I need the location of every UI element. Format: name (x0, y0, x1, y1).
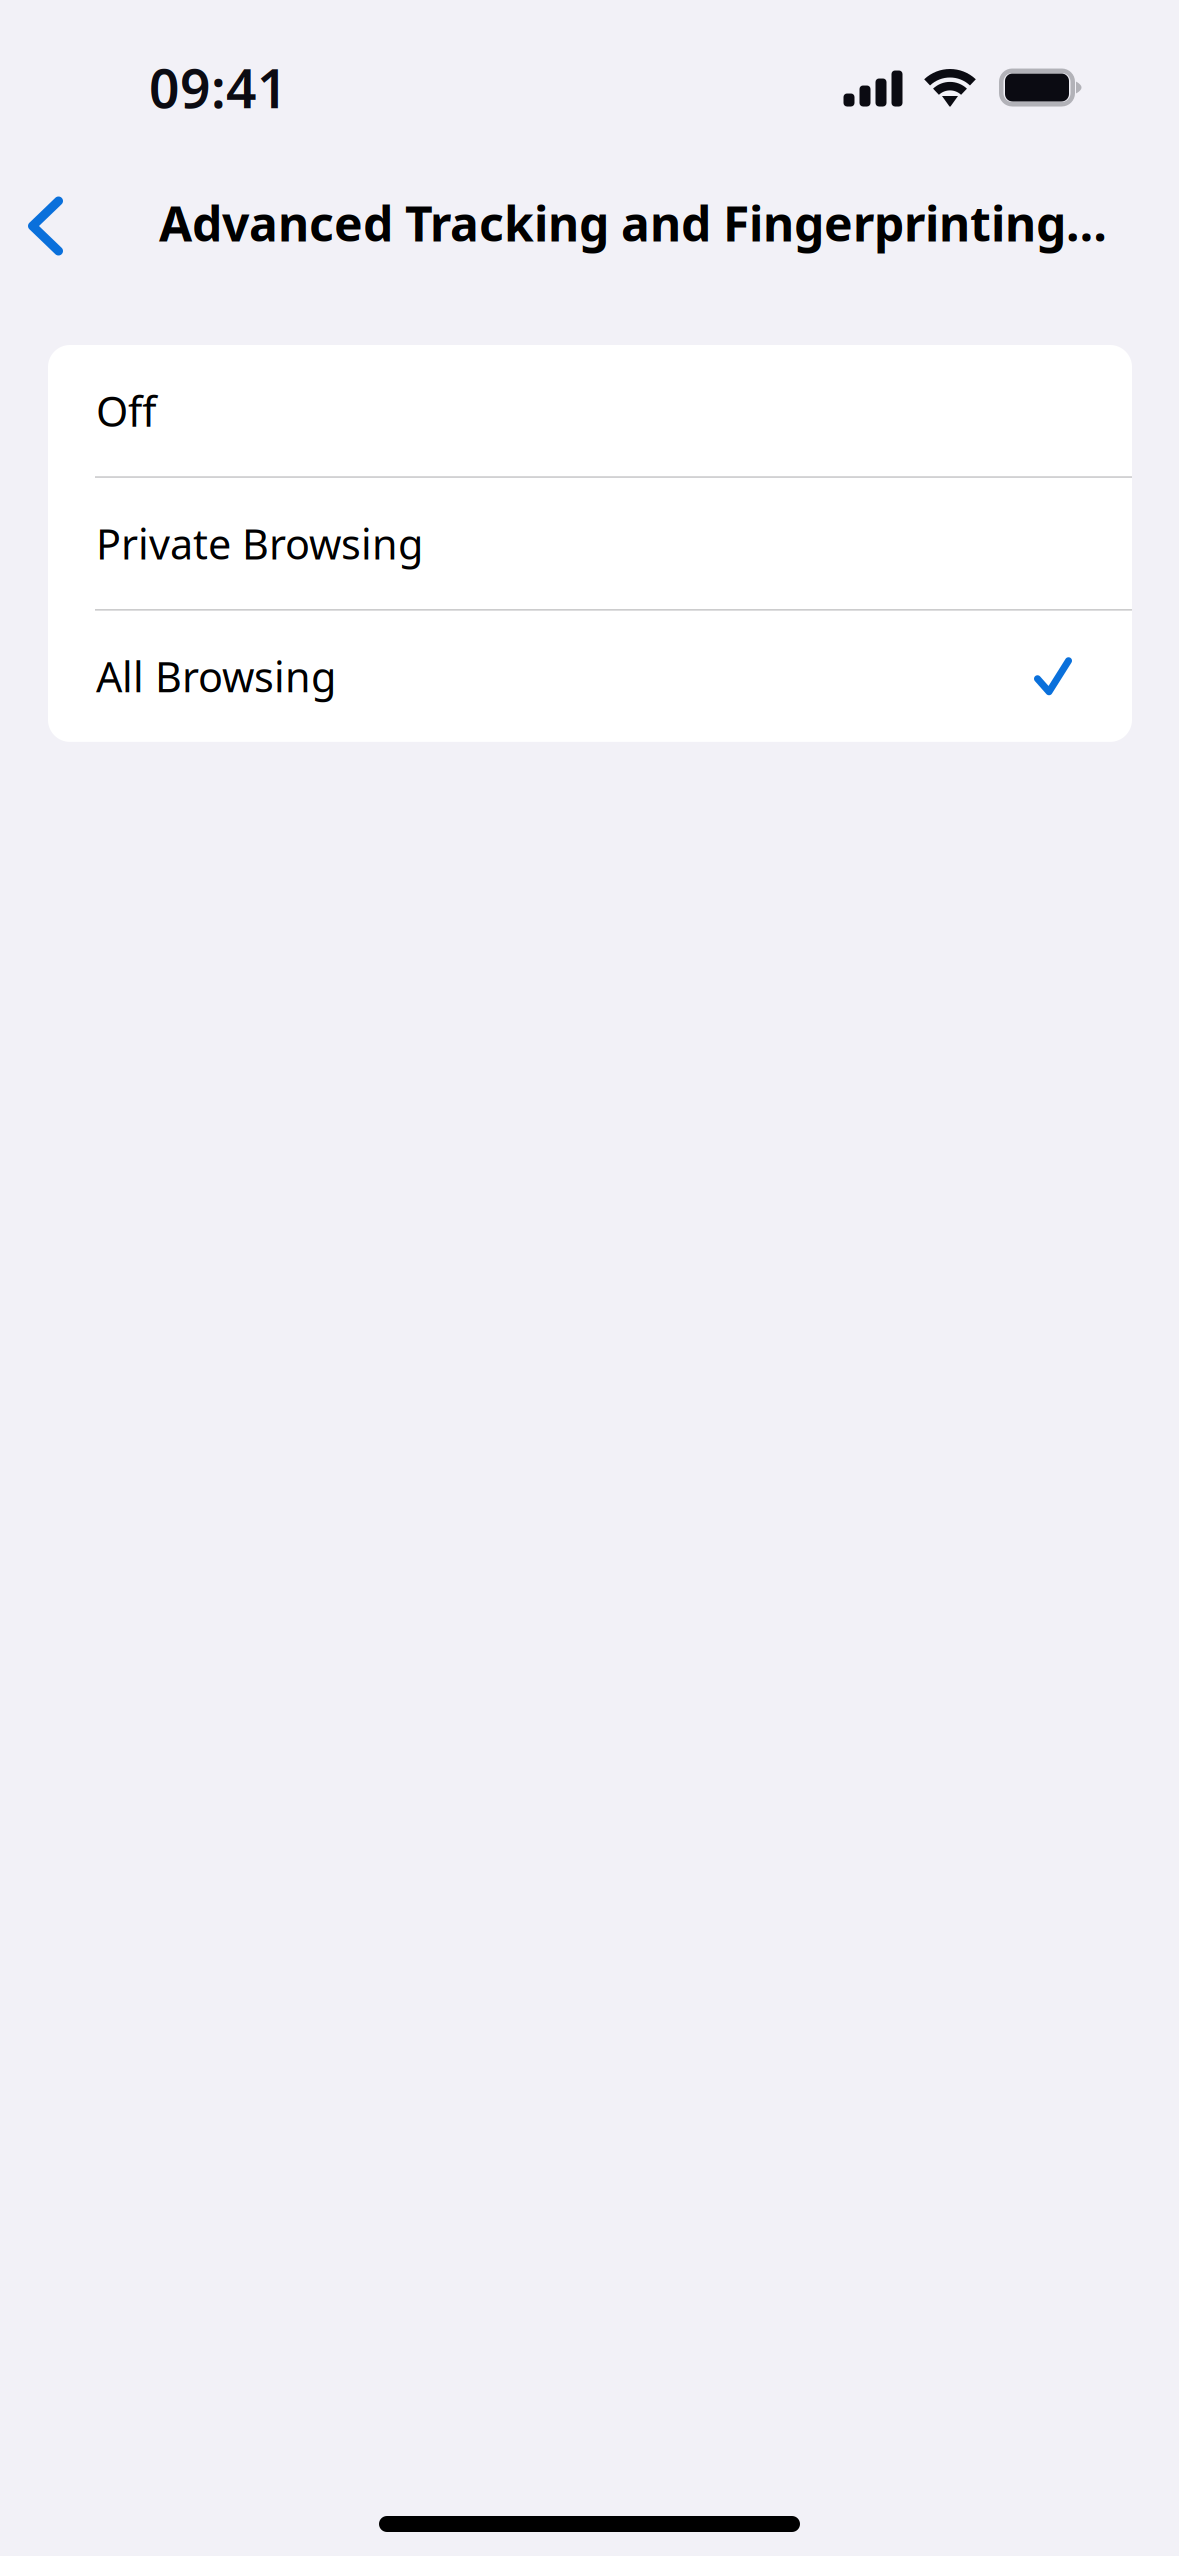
staticText: Advanced Tracking and Fingerprinting… (159, 191, 1107, 255)
staticText: All Browsing (96, 649, 336, 704)
staticText: Private Browsing (96, 516, 423, 571)
staticText: Off (96, 383, 156, 438)
button[interactable]: Off (48, 345, 1132, 476)
button[interactable]: Private Browsing (48, 478, 1132, 609)
button[interactable]: Back (0, 175, 96, 271)
staticText: 09:41 (149, 52, 288, 123)
button[interactable]: All Browsing (48, 611, 1132, 742)
